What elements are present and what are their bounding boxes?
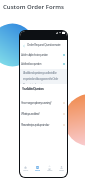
staticText: Orders <box>47 169 52 172</box>
staticText: Your Added Questions <box>22 87 44 91</box>
button[interactable]: Forms <box>31 163 43 174</box>
staticText: Please select your pickup window <box>21 123 63 127</box>
staticText: Custom Order Forms <box>3 3 64 11</box>
button[interactable]: Profile <box>55 163 67 174</box>
staticText: Request window customers use. <box>23 83 52 84</box>
staticText: Add text box question <box>21 62 63 66</box>
button[interactable]: Back <box>21 43 26 48</box>
button[interactable]: How many people are you serving? <box>20 97 67 108</box>
staticText: Home <box>23 169 28 172</box>
button[interactable]: Add multiple choice question <box>21 53 65 57</box>
staticText: How many people are you serving? <box>21 101 63 105</box>
staticText: requested and also appear on the Order <box>23 77 58 81</box>
staticText: What is your address? <box>21 112 63 116</box>
staticText: Profile <box>59 169 64 172</box>
staticText: Add multiple choice question <box>21 53 63 57</box>
button[interactable]: Orders <box>43 163 55 174</box>
staticText: Order Request Questionnaire <box>27 43 61 47</box>
button[interactable]: Please select your pickup window <box>20 119 67 130</box>
button[interactable]: What is your address? <box>20 108 67 119</box>
button[interactable]: Home <box>20 163 31 174</box>
staticText: Forms <box>35 169 40 172</box>
staticText: All additional questions you collect wil… <box>23 71 57 75</box>
button[interactable]: Add text box question <box>21 62 65 66</box>
